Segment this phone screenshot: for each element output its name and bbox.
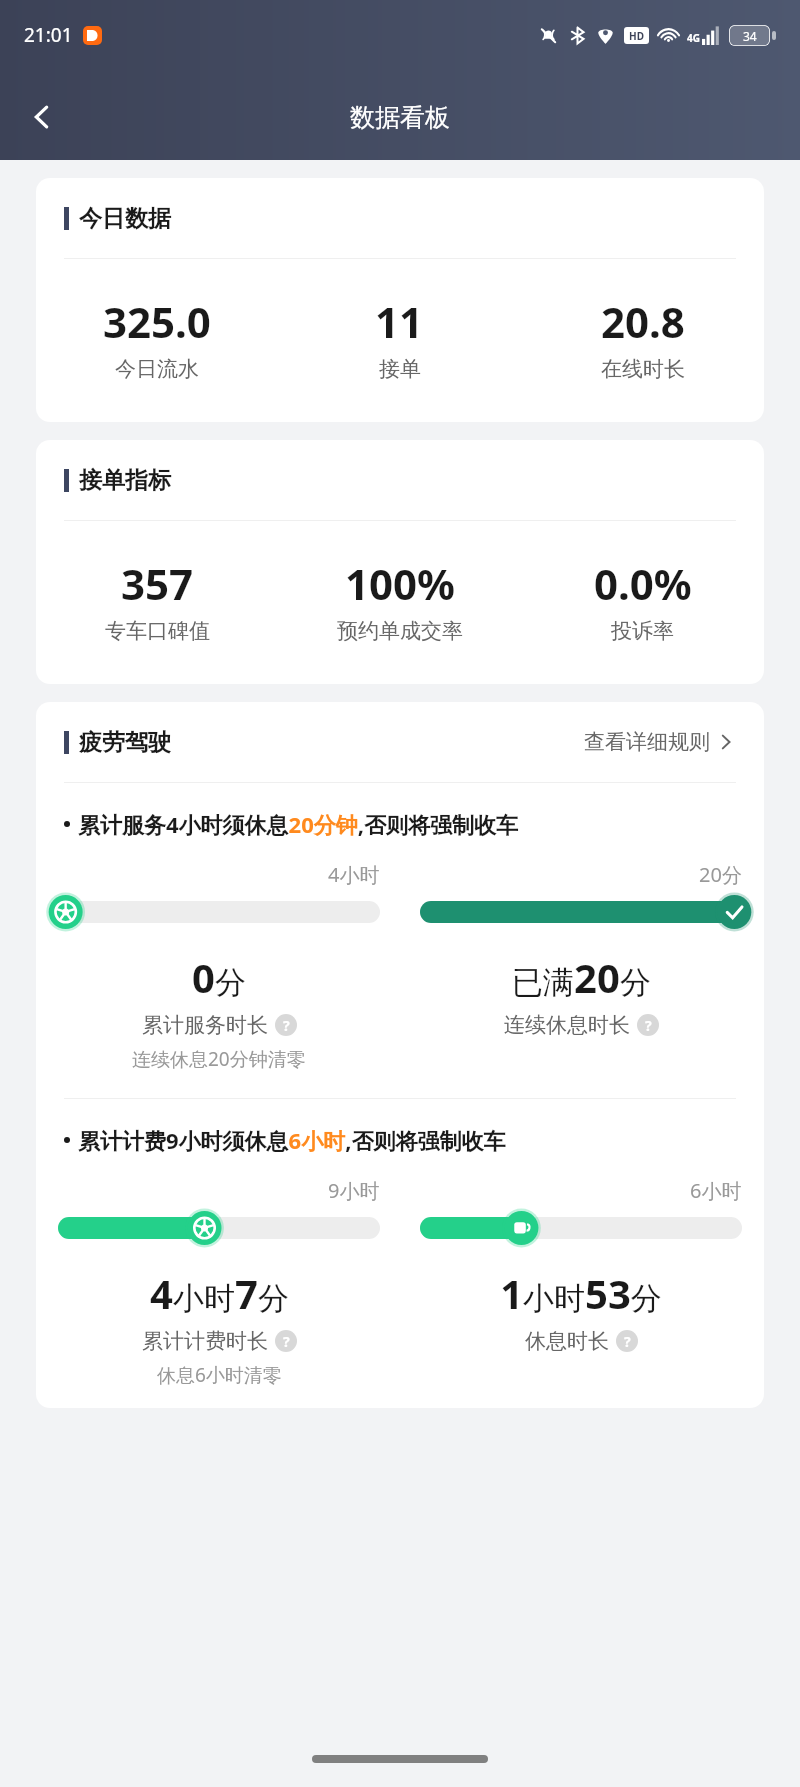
button[interactable]: Help [275,1330,297,1352]
button[interactable]: 查看详细规则 [582,723,736,761]
staticText: 0.0% [594,555,692,612]
staticText: 4G [687,31,700,45]
staticText: 今日数据 [79,204,171,233]
staticText: 累计服务4小时须休息20分钟,否则将强制收车 [78,809,519,839]
button[interactable]: Help [275,1014,297,1036]
button[interactable]: Back [14,89,70,145]
staticText: 专车口碑值 [105,618,210,644]
staticText: ? [283,1016,290,1035]
staticText: 投诉率 [611,618,674,644]
button[interactable]: Help [616,1330,638,1352]
staticText: HD [629,29,644,43]
staticText: 预约单成交率 [337,618,463,644]
staticText: 4小时7分 [150,1266,289,1320]
staticText: 20.8 [601,293,685,350]
staticText: 11 [375,293,424,350]
staticText: ? [645,1016,652,1035]
staticText: 1小时53分 [500,1266,662,1320]
staticText: 累计服务时长 [142,1012,268,1038]
staticText: 325.0 [103,293,211,350]
staticText: 查看详细规则 [584,729,710,755]
staticText: 累计计费时长 [142,1328,268,1354]
staticText: 0分 [192,950,246,1004]
staticText: 今日流水 [115,356,199,382]
staticText: 疲劳驾驶 [79,728,171,757]
staticText: 连续休息时长 [504,1012,630,1038]
staticText: 已满20分 [512,950,651,1004]
staticText: 连续休息20分钟清零 [132,1046,306,1072]
staticText: 数据看板 [350,102,450,133]
staticText: ? [624,1332,631,1351]
staticText: 休息时长 [525,1328,609,1354]
staticText: 357 [121,555,194,612]
staticText: ? [283,1332,290,1351]
button[interactable]: Help [637,1014,659,1036]
staticText: 100% [345,555,455,612]
staticText: 在线时长 [601,356,685,382]
staticText: 接单 [379,356,421,382]
staticText: 接单指标 [79,466,171,495]
staticText: 4小时 [328,861,380,888]
staticText: 6小时 [690,1177,742,1204]
staticText: 34 [743,28,757,44]
staticText: 累计计费9小时须休息6小时,否则将强制收车 [78,1125,506,1155]
staticText: 20分 [699,861,742,888]
staticText: 休息6小时清零 [157,1362,282,1388]
staticText: 9小时 [328,1177,380,1204]
staticText: 21:01 [24,22,73,48]
